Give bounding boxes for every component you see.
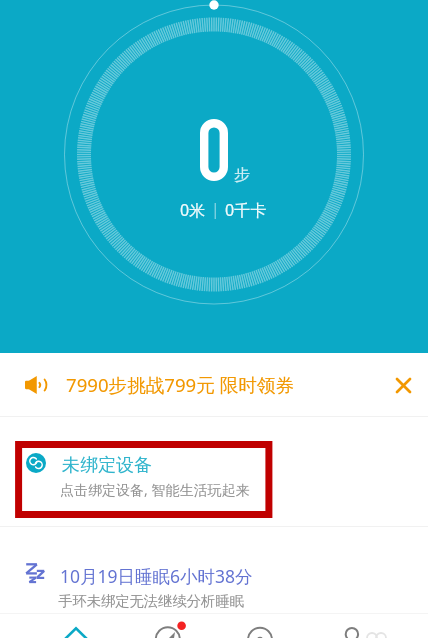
staticText: 10月19日睡眠6小时38分: [60, 564, 253, 588]
button[interactable]: Close: [385, 367, 421, 403]
staticText: 未绑定设备: [62, 454, 152, 477]
staticText: 步: [234, 165, 250, 185]
staticText: 7990步挑战799元 限时领券: [66, 372, 295, 397]
staticText: 0米: [180, 199, 206, 221]
staticText: |: [211, 198, 220, 220]
button[interactable]: Health: [214, 614, 321, 638]
staticText: 0千卡: [225, 199, 267, 221]
button[interactable]: Profile: [321, 614, 428, 638]
button[interactable]: 未绑定设备: [0, 417, 428, 526]
staticText: 手环未绑定无法继续分析睡眠: [58, 592, 244, 610]
button[interactable]: 7990步挑战799元 限时领券: [0, 353, 428, 416]
button[interactable]: Home: [0, 614, 107, 638]
button[interactable]: Discover: [107, 614, 214, 638]
button[interactable]: 10月19日睡眠6小时38分: [0, 527, 428, 613]
staticText: 点击绑定设备, 智能生活玩起来: [60, 480, 250, 499]
